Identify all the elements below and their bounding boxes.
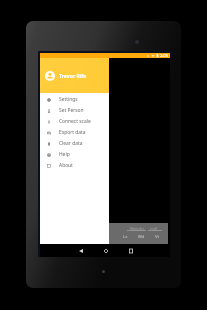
staticText: Lx: [123, 234, 128, 240]
button[interactable]: Home: [100, 245, 111, 256]
staticText: 2:05: [160, 53, 168, 58]
staticText: Weight: [130, 226, 144, 232]
staticText: Clear data: [59, 140, 83, 147]
staticText: null: [150, 226, 158, 232]
button[interactable]: Recent apps: [125, 245, 136, 256]
staticText: Set Person: [59, 107, 84, 114]
button[interactable]: Set Person: [40, 105, 109, 116]
staticText: Settings: [59, 96, 78, 103]
button[interactable]: Weight: [109, 223, 168, 244]
staticText: About: [59, 162, 73, 169]
button[interactable]: Help: [40, 149, 109, 160]
staticText: Vt: [155, 234, 160, 240]
staticText: Wd: [138, 234, 145, 240]
button[interactable]: About: [40, 160, 109, 171]
button[interactable]: Trevor Rife: [40, 58, 109, 93]
staticText: Help: [59, 151, 70, 158]
button[interactable]: Clear data: [40, 138, 109, 149]
staticText: Connect scale: [59, 118, 91, 125]
staticText: Export data: [59, 129, 86, 136]
button[interactable]: Settings: [40, 94, 109, 105]
button[interactable]: Export data: [40, 127, 109, 138]
staticText: Trevor Rife: [59, 73, 87, 80]
button[interactable]: Connect scale: [40, 116, 109, 127]
button[interactable]: Back: [75, 245, 86, 256]
